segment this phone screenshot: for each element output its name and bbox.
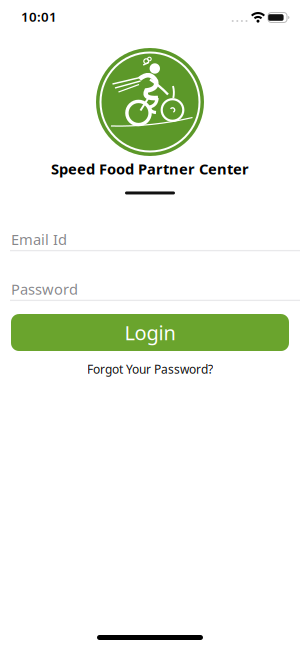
staticText: Login [124,319,175,346]
button[interactable]: Password [0,279,300,301]
button[interactable]: Forgot Your Password? [87,361,213,377]
staticText: Password [11,279,78,299]
staticText: Email Id [11,229,67,249]
staticText: 10:01 [21,8,57,25]
staticText: Forgot Your Password? [87,361,213,377]
staticText: Speed Food Partner Center [51,159,249,178]
button[interactable]: Login [0,314,300,351]
button[interactable]: Email Id [0,229,300,251]
